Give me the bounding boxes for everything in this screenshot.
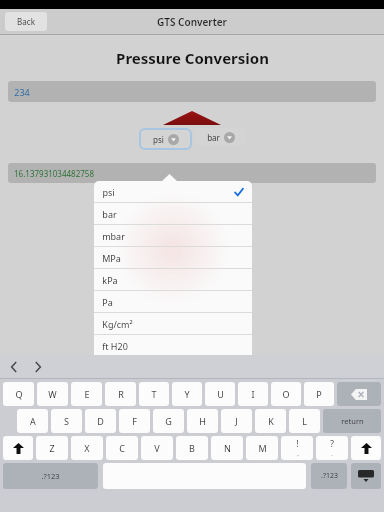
staticText: .?123 [321, 471, 338, 481]
staticText: , [297, 450, 299, 458]
button[interactable]: bar [94, 203, 252, 225]
button[interactable]: psi [141, 130, 190, 148]
staticText: MPa [102, 252, 121, 264]
button[interactable]: T [139, 382, 169, 406]
staticText: J [235, 415, 238, 427]
button[interactable]: J [221, 409, 252, 433]
staticText: V [154, 442, 160, 454]
staticText: GTS Converter [157, 15, 227, 29]
button[interactable]: Pa [94, 291, 252, 313]
staticText: H [199, 415, 206, 427]
button[interactable]: H [187, 409, 218, 433]
button[interactable]: Shift [3, 436, 33, 460]
button[interactable]: Kg/cm² [94, 313, 252, 335]
staticText: Pressure Conversion [116, 48, 269, 68]
button[interactable]: Back [5, 12, 47, 31]
staticText: mbar [102, 230, 125, 242]
staticText: Y [184, 388, 190, 400]
button[interactable]: S [51, 409, 82, 433]
staticText: T [151, 388, 157, 400]
staticText: N [224, 442, 231, 454]
staticText: . [331, 450, 333, 458]
button[interactable]: U [205, 382, 235, 406]
staticText: bar [102, 208, 117, 220]
staticText: Kg/cm² [102, 318, 133, 330]
button[interactable]: X [71, 436, 103, 460]
button[interactable]: V [141, 436, 173, 460]
staticText: 234 [14, 86, 30, 98]
staticText: Pa [102, 296, 113, 308]
button[interactable]: W [37, 382, 68, 406]
button[interactable]: P [304, 382, 334, 406]
staticText: Z [49, 442, 55, 454]
button[interactable]: O [271, 382, 301, 406]
button[interactable]: A [17, 409, 48, 433]
button[interactable]: .?123 [3, 463, 98, 489]
button[interactable]: MPa [94, 247, 252, 269]
button[interactable]: Backspace [337, 382, 381, 406]
staticText: A [30, 415, 36, 427]
staticText: kPa [102, 274, 118, 286]
button[interactable]: ? [316, 436, 348, 460]
staticText: Back [17, 16, 35, 27]
staticText: .?123 [41, 471, 60, 481]
staticText: M [258, 442, 267, 454]
staticText: P [316, 388, 322, 400]
staticText: B [189, 442, 195, 454]
button[interactable]: D [85, 409, 116, 433]
staticText: O [282, 388, 290, 400]
staticText: Q [15, 388, 23, 400]
staticText: 16.137931034482758 [14, 168, 94, 179]
staticText: G [165, 415, 172, 427]
staticText: K [268, 415, 274, 427]
staticText: ! [296, 438, 299, 450]
button[interactable]: B [176, 436, 208, 460]
staticText: D [97, 415, 104, 427]
button[interactable]: Z [36, 436, 68, 460]
staticText: I [251, 388, 255, 400]
staticText: bar [207, 132, 220, 143]
button[interactable]: I [238, 382, 268, 406]
button[interactable]: return [323, 409, 381, 433]
staticText: E [84, 388, 90, 400]
staticText: C [119, 442, 125, 454]
staticText: S [64, 415, 69, 427]
button[interactable]: 234 [8, 81, 376, 102]
staticText: X [84, 442, 90, 454]
button[interactable]: E [71, 382, 102, 406]
staticText: psi [153, 134, 164, 145]
staticText: R [118, 388, 124, 400]
staticText: ft H20 [102, 340, 128, 352]
button[interactable]: psi [94, 181, 252, 203]
button[interactable]: F [119, 409, 150, 433]
button[interactable]: Previous field [9, 362, 19, 372]
button[interactable]: Next field [33, 362, 43, 372]
staticText: return [341, 416, 364, 426]
staticText: W [48, 388, 57, 400]
button[interactable]: ! [281, 436, 313, 460]
button[interactable]: Hide keyboard [351, 463, 381, 489]
button[interactable]: Shift [351, 436, 381, 460]
button[interactable]: ft H20 [94, 335, 252, 357]
button[interactable]: L [289, 409, 320, 433]
button[interactable]: Q [3, 382, 34, 406]
button[interactable]: .?123 [311, 463, 347, 489]
staticText: psi [102, 186, 115, 198]
button[interactable]: M [246, 436, 278, 460]
button[interactable]: mbar [94, 225, 252, 247]
button[interactable]: in H20 [94, 357, 252, 379]
button[interactable]: R [105, 382, 136, 406]
button[interactable]: G [153, 409, 184, 433]
button[interactable]: K [255, 409, 286, 433]
button[interactable]: C [106, 436, 138, 460]
button[interactable]: bar [196, 128, 245, 146]
button[interactable]: Y [172, 382, 202, 406]
staticText: ? [330, 438, 334, 450]
button[interactable]: N [211, 436, 243, 460]
staticText: F [132, 415, 137, 427]
staticText: U [217, 388, 224, 400]
button[interactable]: kPa [94, 269, 252, 291]
staticText: L [302, 415, 307, 427]
